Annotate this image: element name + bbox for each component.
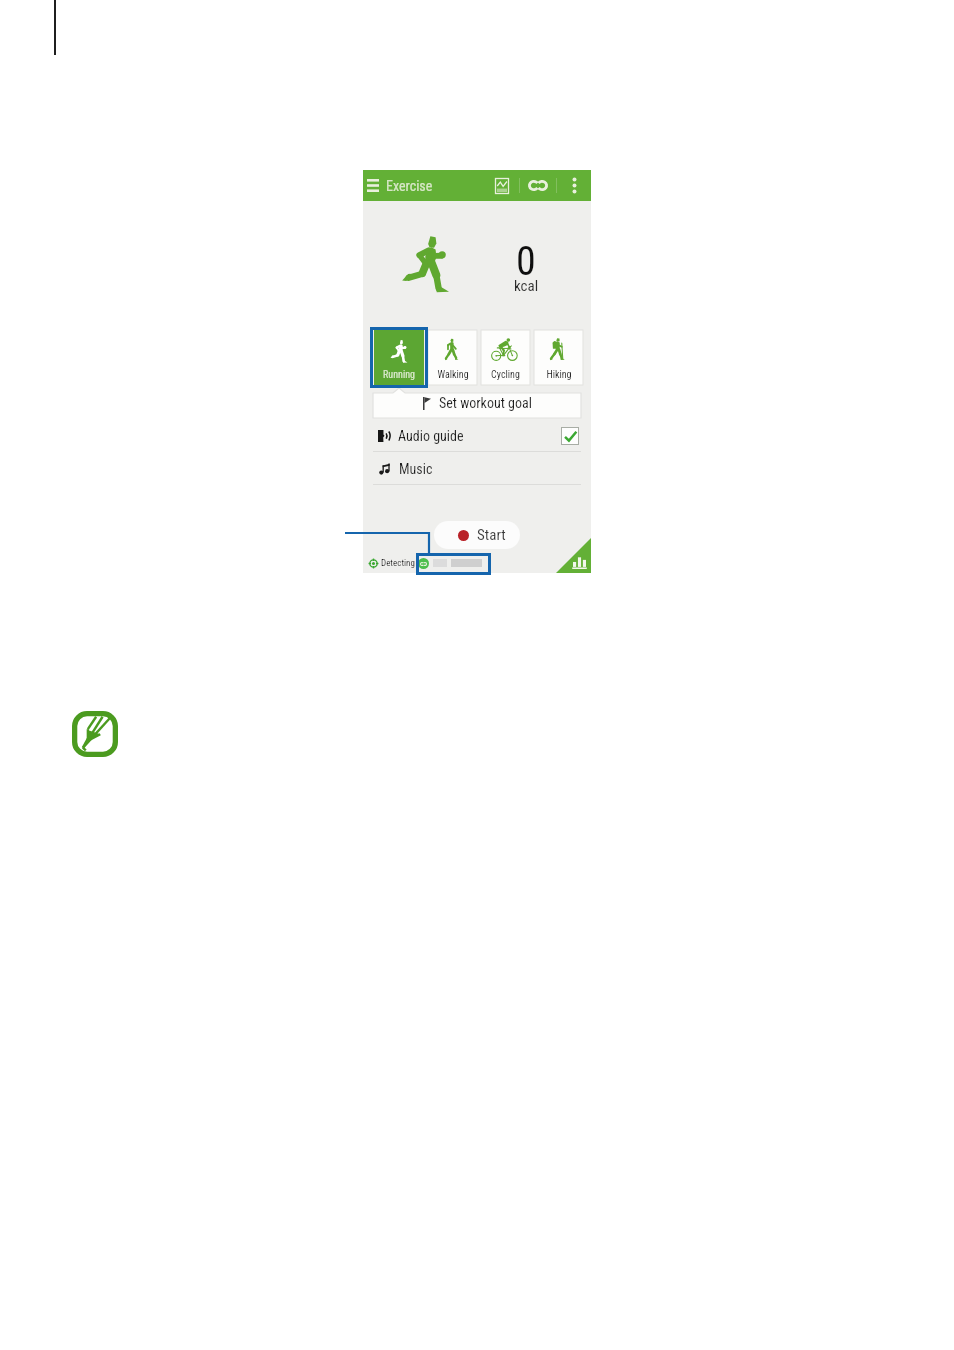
button[interactable]: Music: [373, 456, 581, 482]
button[interactable]: Set workout goal: [373, 388, 581, 418]
button[interactable]: Detecting: [363, 553, 591, 573]
button[interactable]: Walking: [428, 330, 477, 385]
button[interactable]: Chart: [487, 170, 517, 201]
staticText: Cycling: [491, 369, 520, 381]
button[interactable]: Link: [523, 170, 553, 201]
button[interactable]: Running: [374, 330, 424, 385]
staticText: Exercise: [386, 178, 433, 194]
staticText: Hiking: [546, 369, 572, 381]
button[interactable]: Cycling: [481, 330, 530, 385]
button[interactable]: Start: [434, 521, 520, 549]
button[interactable]: Audio guide: [373, 423, 581, 449]
button[interactable]: Navigation menu: [363, 170, 383, 201]
staticText: 0: [516, 238, 536, 285]
staticText: Music: [399, 461, 433, 477]
staticText: Detecting: [381, 558, 415, 569]
staticText: Set workout goal: [439, 395, 532, 411]
staticText: Walking: [437, 369, 469, 381]
staticText: Running: [383, 369, 415, 381]
button[interactable]: Statistics: [556, 538, 591, 573]
button[interactable]: More options: [562, 170, 586, 201]
staticText: Audio guide: [398, 428, 464, 444]
staticText: Start: [477, 526, 506, 544]
staticText: kcal: [514, 277, 539, 295]
button[interactable]: Hiking: [534, 330, 583, 385]
